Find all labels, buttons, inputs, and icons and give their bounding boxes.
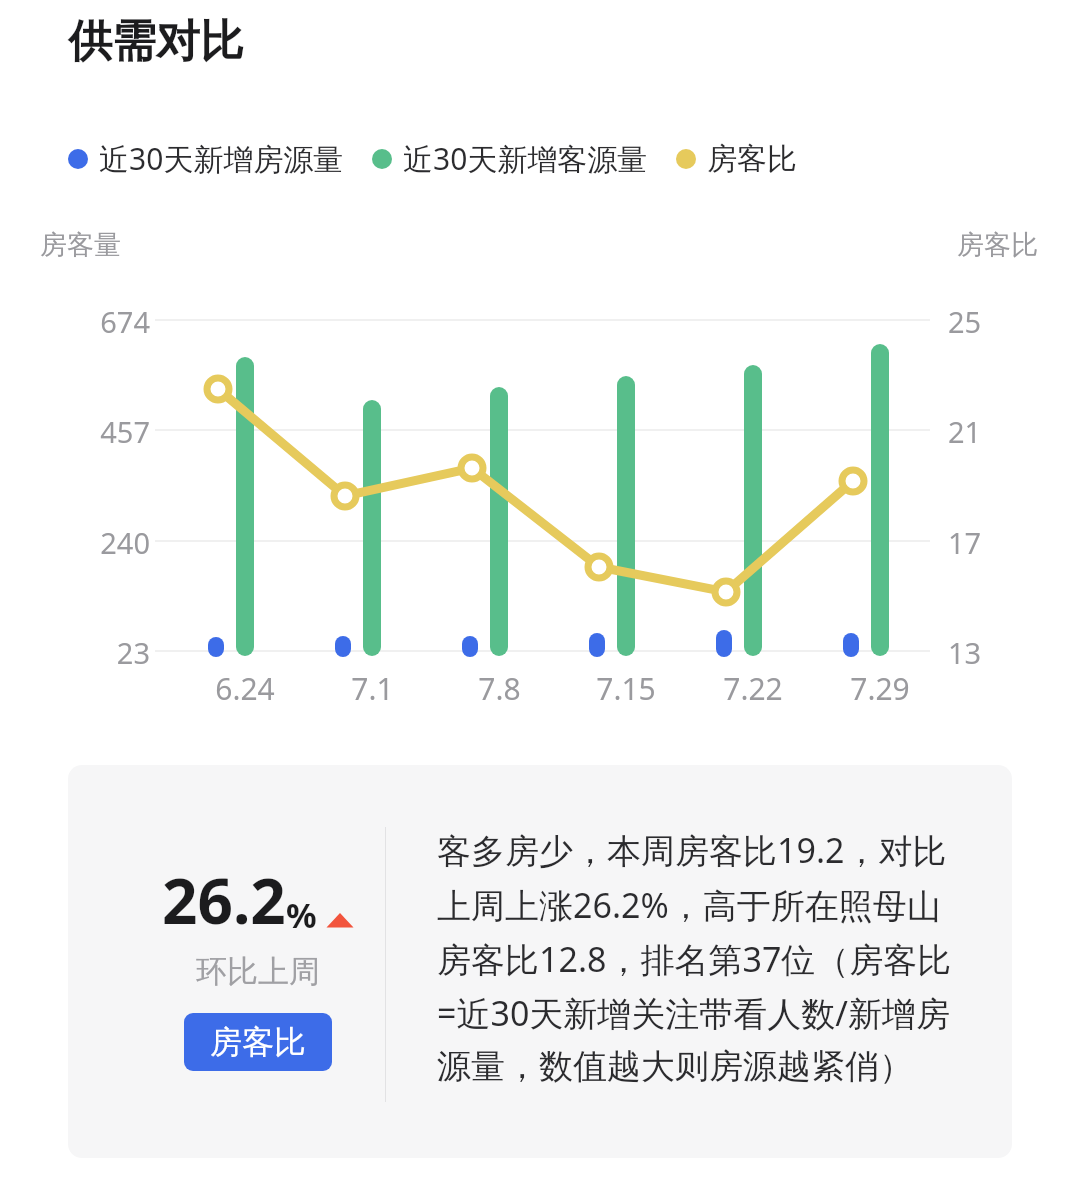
staticText: 17 xyxy=(948,523,982,562)
button[interactable]: 近30天新增客源量 xyxy=(372,138,648,179)
staticText: 26.2 xyxy=(162,858,286,942)
button[interactable]: 房客比 xyxy=(184,1013,332,1071)
staticText: 240 xyxy=(100,523,150,562)
staticText: 21 xyxy=(948,412,982,451)
staticText: 7.15 xyxy=(596,668,656,709)
staticText: 23 xyxy=(116,633,150,672)
staticText: 环比上周 xyxy=(196,952,320,991)
staticText: 7.29 xyxy=(850,668,910,709)
staticText: 房客比 xyxy=(707,140,797,178)
staticText: 25 xyxy=(948,302,982,341)
button[interactable]: 26.2 xyxy=(68,765,1012,1158)
staticText: 供需对比 xyxy=(68,14,244,69)
staticText: 房客量 xyxy=(40,228,121,262)
staticText: 近30天新增客源量 xyxy=(403,138,648,179)
staticText: 674 xyxy=(100,302,150,341)
staticText: 13 xyxy=(948,633,982,672)
button[interactable]: 近30天新增房源量 xyxy=(68,138,344,179)
staticText: 房客比 xyxy=(210,1022,306,1062)
staticText: 7.22 xyxy=(723,668,783,709)
staticText: 457 xyxy=(100,412,150,451)
staticText: 近30天新增房源量 xyxy=(99,138,344,179)
staticText: 客多房少，本周房客比19.2，对比上周上涨26.2%，高于所在照母山房客比12.… xyxy=(437,827,967,1088)
button[interactable]: 房客比 xyxy=(676,140,797,178)
staticText: 房客比 xyxy=(957,228,1038,262)
staticText: 7.8 xyxy=(478,668,521,709)
staticText: % xyxy=(286,892,317,938)
staticText: 6.24 xyxy=(215,668,275,709)
staticText: 7.1 xyxy=(351,668,394,709)
